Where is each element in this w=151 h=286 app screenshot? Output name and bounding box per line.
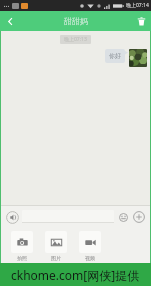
staticText: 晚上07:13	[64, 36, 87, 43]
staticText: 拍照	[17, 255, 27, 261]
staticText: 视频	[85, 255, 95, 261]
button[interactable]: Record video	[79, 231, 101, 261]
staticText: 你好	[109, 52, 121, 60]
button[interactable]: Emoji	[117, 211, 129, 223]
button[interactable]: Delete conversation	[131, 11, 151, 31]
button[interactable]: 你好	[105, 49, 125, 63]
button[interactable]: Back	[0, 11, 20, 31]
button[interactable]: 甜甜妈	[64, 16, 88, 26]
button[interactable]	[22, 210, 114, 223]
button[interactable]: Contact avatar	[129, 49, 147, 67]
staticText: 甜甜妈	[64, 16, 88, 26]
staticText: ckhome.com[网侠]提供	[11, 267, 140, 283]
button[interactable]: Photo gallery	[45, 231, 67, 261]
button[interactable]: More options	[132, 210, 146, 224]
button[interactable]: Voice message	[5, 210, 19, 224]
staticText: 图片	[51, 255, 61, 261]
button[interactable]: Take photo	[11, 231, 33, 261]
staticText: 晚上07:14	[126, 2, 149, 9]
